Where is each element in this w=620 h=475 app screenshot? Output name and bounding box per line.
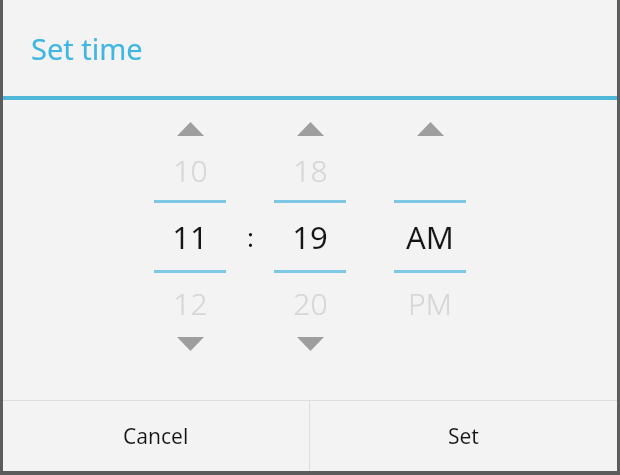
staticText: 20	[293, 283, 328, 324]
button[interactable]: Increment AM PM	[402, 114, 458, 144]
button[interactable]: Increment minute	[282, 114, 338, 144]
button[interactable]: Decrement minute	[282, 329, 338, 359]
button[interactable]: Set	[310, 401, 617, 471]
staticText: Set time	[31, 29, 143, 68]
button[interactable]: Increment hour	[162, 114, 218, 144]
staticText: Set	[448, 422, 479, 451]
staticText: 19	[292, 216, 328, 258]
staticText: Cancel	[123, 422, 189, 451]
staticText: 11	[172, 216, 208, 258]
staticText: 12	[173, 283, 208, 324]
staticText: 18	[293, 150, 328, 191]
staticText: AM	[406, 216, 454, 258]
button[interactable]: 11	[144, 203, 236, 270]
staticText: 10	[173, 150, 208, 191]
button[interactable]: Cancel	[3, 401, 309, 471]
staticText: PM	[408, 283, 452, 324]
button[interactable]: 19	[264, 203, 356, 270]
staticText: :	[247, 219, 254, 254]
button[interactable]: Decrement hour	[162, 329, 218, 359]
button[interactable]: AM	[384, 203, 476, 270]
